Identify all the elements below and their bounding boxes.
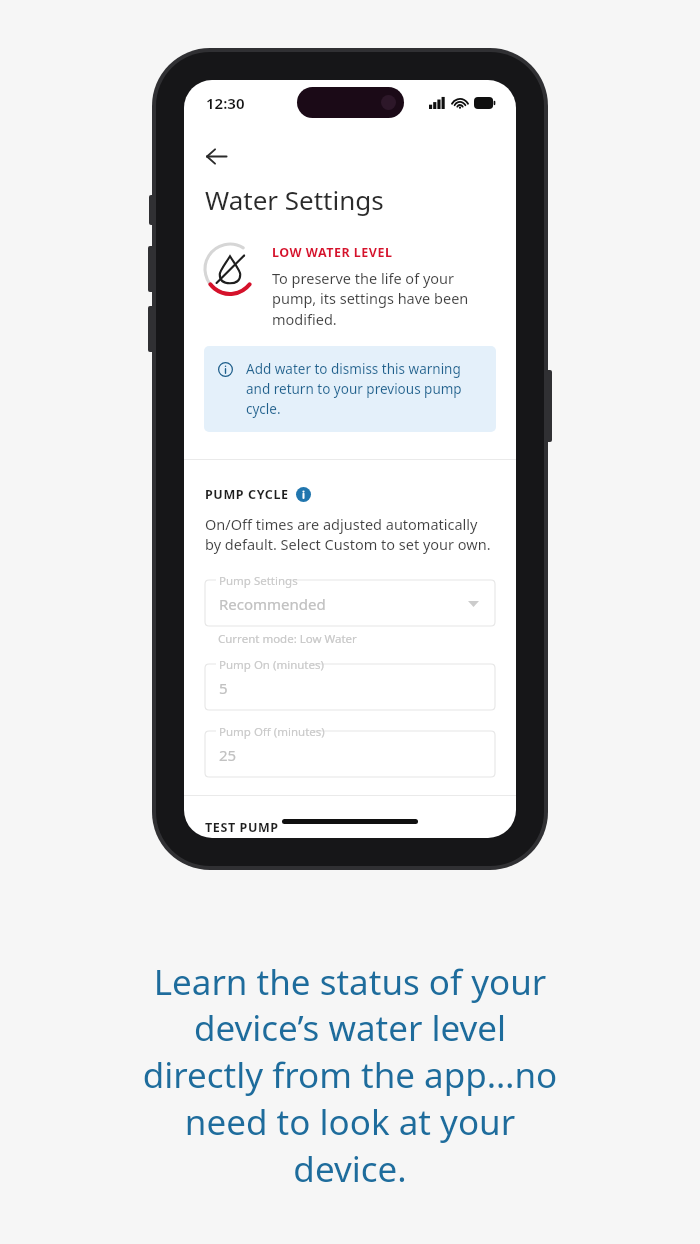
button[interactable]: Pump Off (minutes) — [205, 724, 495, 777]
staticText: TEST PUMP — [205, 819, 279, 836]
staticText: 25 — [219, 745, 237, 765]
button[interactable]: Pump On (minutes) — [205, 657, 495, 710]
staticText: 12:30 — [206, 93, 245, 113]
staticText: Recommended — [219, 594, 326, 614]
staticText: Pump Settings — [219, 573, 298, 589]
button[interactable]: Add water to dismiss this warning and re… — [204, 346, 496, 432]
staticText: PUMP CYCLE — [205, 486, 289, 503]
staticText: Water Settings — [205, 182, 384, 217]
button[interactable]: Back — [196, 136, 236, 176]
staticText: Current mode: Low Water — [218, 631, 357, 647]
staticText: Pump On (minutes) — [219, 657, 324, 673]
staticText: Learn the status of your device’s water … — [130, 958, 570, 1193]
staticText: Pump Off (minutes) — [219, 724, 325, 740]
staticText: Add water to dismiss this warning and re… — [246, 360, 482, 418]
staticText: LOW WATER LEVEL — [272, 244, 393, 261]
staticText: On/Off times are adjusted automatically … — [205, 514, 495, 555]
staticText: 5 — [219, 678, 228, 698]
button[interactable]: Pump Settings — [205, 573, 495, 626]
staticText: To preserve the life of your pump, its s… — [272, 268, 494, 330]
button[interactable]: Pump cycle information — [296, 487, 311, 502]
